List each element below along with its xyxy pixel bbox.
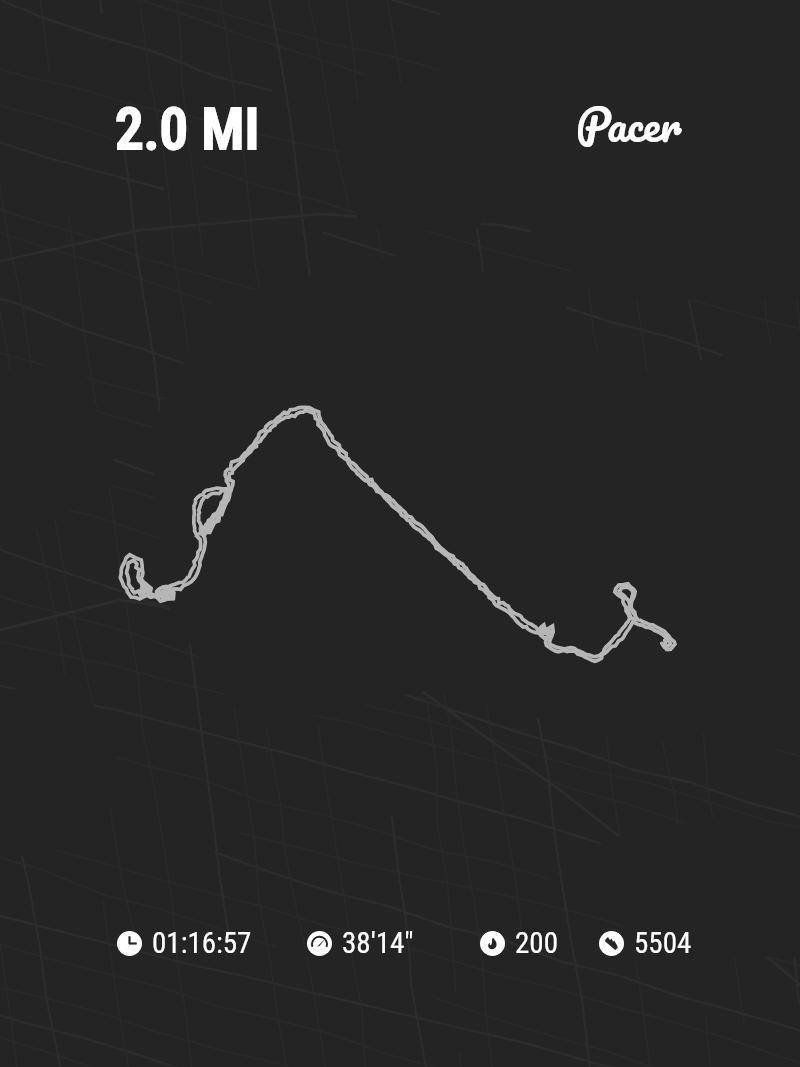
button[interactable]: Duration: [117, 926, 252, 960]
button[interactable]: Run map: [0, 0, 800, 1067]
button[interactable]: Pace: [307, 926, 414, 960]
staticText: 01:16:57: [152, 926, 252, 960]
staticText: 38'14": [342, 926, 414, 960]
button[interactable]: Calories: [480, 926, 558, 960]
staticText: 5504: [634, 926, 692, 960]
staticText: 2.0 MI: [115, 96, 260, 163]
staticText: 200: [515, 926, 558, 960]
button[interactable]: Steps: [599, 926, 692, 960]
button[interactable]: Pacer: [576, 86, 682, 162]
